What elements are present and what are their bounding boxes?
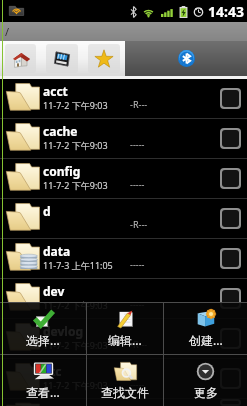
button[interactable]: Select devlog (214, 319, 247, 358)
staticText: 更多 (194, 385, 218, 400)
button[interactable]: 查找文件 (87, 355, 163, 406)
button[interactable]: Select dev (214, 279, 247, 318)
staticText: 创建... (189, 332, 223, 348)
button[interactable]: Select config (214, 159, 247, 198)
button[interactable]: d (0, 199, 247, 238)
staticText: ----- (130, 378, 145, 390)
button[interactable]: Bluetooth (125, 41, 247, 76)
staticText: 11-7-2 下午9:03 (43, 299, 108, 311)
staticText: -R--- (130, 338, 148, 350)
staticText: devlog (43, 323, 84, 339)
staticText: 查看... (26, 384, 60, 400)
staticText: 11-7-2 下午9:03 (43, 339, 108, 351)
button[interactable]: Device (46, 44, 78, 73)
staticText: 11-7-3 上午11:05 (43, 259, 113, 271)
staticText: 14:43 (208, 2, 244, 21)
button[interactable]: etc (0, 359, 247, 398)
button[interactable]: Select etc (214, 359, 247, 398)
staticText: config (43, 163, 81, 179)
button[interactable]: 创建... (164, 303, 247, 354)
staticText: dev (43, 283, 65, 299)
staticText: ----- (130, 178, 145, 190)
button[interactable]: acct (0, 79, 247, 118)
button[interactable]: Favorites (88, 44, 120, 73)
staticText: 查找文件 (101, 385, 149, 400)
button[interactable]: Select data (214, 239, 247, 278)
staticText: -R--- (130, 98, 148, 110)
staticText: ----- (130, 258, 145, 270)
staticText: ----- (130, 298, 145, 310)
staticText: 11-7-2 下午9:03 (43, 379, 108, 391)
staticText: d (43, 203, 51, 219)
button[interactable]: Select d (214, 199, 247, 238)
button[interactable]: Home (5, 44, 36, 73)
staticText: etc (43, 363, 62, 379)
staticText: ----- (130, 138, 145, 150)
staticText: / (5, 24, 10, 39)
button[interactable]: 编辑... (87, 303, 163, 354)
staticText: 编辑... (108, 332, 142, 348)
staticText: data (43, 243, 71, 259)
staticText: 选择... (26, 332, 60, 348)
button[interactable]: cache (0, 119, 247, 158)
button[interactable]: 查看... (0, 355, 86, 406)
staticText: 11-7-2 下午9:03 (43, 99, 108, 111)
staticText: cache (43, 123, 78, 139)
button[interactable]: Select cache (214, 119, 247, 158)
button[interactable]: dev (0, 279, 247, 318)
button[interactable]: mnt (0, 399, 247, 406)
staticText: -R--- (130, 218, 148, 230)
button[interactable]: config (0, 159, 247, 198)
button[interactable]: Select mnt (214, 399, 247, 406)
button[interactable]: data (0, 239, 247, 278)
staticText: acct (43, 83, 68, 99)
staticText: 11-7-2 下午9:03 (43, 179, 108, 191)
button[interactable]: Select acct (214, 79, 247, 118)
button[interactable]: 更多 (164, 355, 247, 406)
staticText: 11-7-2 下午9:03 (43, 139, 108, 151)
button[interactable]: devlog (0, 319, 247, 358)
button[interactable]: 选择... (0, 303, 86, 354)
